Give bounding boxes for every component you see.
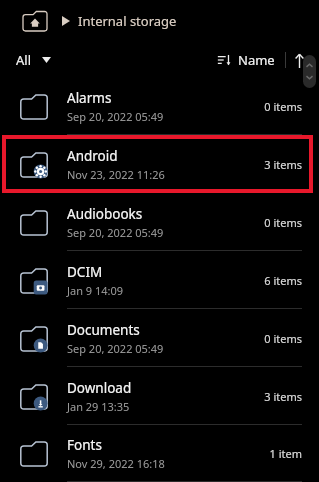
- button[interactable]: Internal storage root: [20, 9, 50, 33]
- staticText: Alarms: [67, 89, 112, 107]
- button[interactable]: All: [12, 47, 55, 73]
- staticText: Fonts: [67, 436, 102, 454]
- staticText: Jan 9 14:09: [67, 283, 124, 298]
- staticText: Sep 20, 2022 05:49: [67, 109, 164, 124]
- staticText: Sep 20, 2022 05:49: [67, 225, 164, 240]
- button[interactable]: Sort ascending: [286, 49, 313, 72]
- staticText: 0 items: [239, 99, 302, 114]
- staticText: Name: [238, 51, 275, 69]
- staticText: 3 items: [239, 389, 302, 404]
- staticText: Download: [67, 379, 132, 397]
- button[interactable]: Audiobooks: [0, 193, 319, 251]
- staticText: Sep 20, 2022 05:49: [67, 341, 164, 356]
- button[interactable]: Download: [0, 367, 319, 425]
- button[interactable]: Fonts: [0, 425, 319, 482]
- staticText: 0 items: [239, 215, 302, 230]
- staticText: DCIM: [67, 263, 103, 281]
- staticText: Jan 29 13:35: [67, 399, 130, 414]
- staticText: 3 items: [239, 157, 302, 172]
- button[interactable]: Documents: [0, 309, 319, 367]
- button[interactable]: Alarms: [0, 77, 319, 135]
- button[interactable]: Android: [0, 135, 319, 193]
- staticText: 6 items: [239, 273, 302, 288]
- staticText: 1 item: [239, 446, 302, 461]
- staticText: 0 items: [239, 331, 302, 346]
- staticText: Nov 23, 2022 11:26: [67, 167, 165, 182]
- staticText: Nov 29, 2022 16:18: [67, 456, 165, 471]
- staticText: Audiobooks: [67, 205, 143, 223]
- button[interactable]: DCIM: [0, 251, 319, 309]
- staticText: All: [16, 51, 32, 69]
- staticText: Android: [67, 147, 118, 165]
- staticText: Documents: [67, 321, 140, 339]
- other: Scrollbar: [303, 55, 316, 88]
- button[interactable]: Name: [214, 47, 278, 73]
- staticText: Internal storage: [78, 12, 177, 30]
